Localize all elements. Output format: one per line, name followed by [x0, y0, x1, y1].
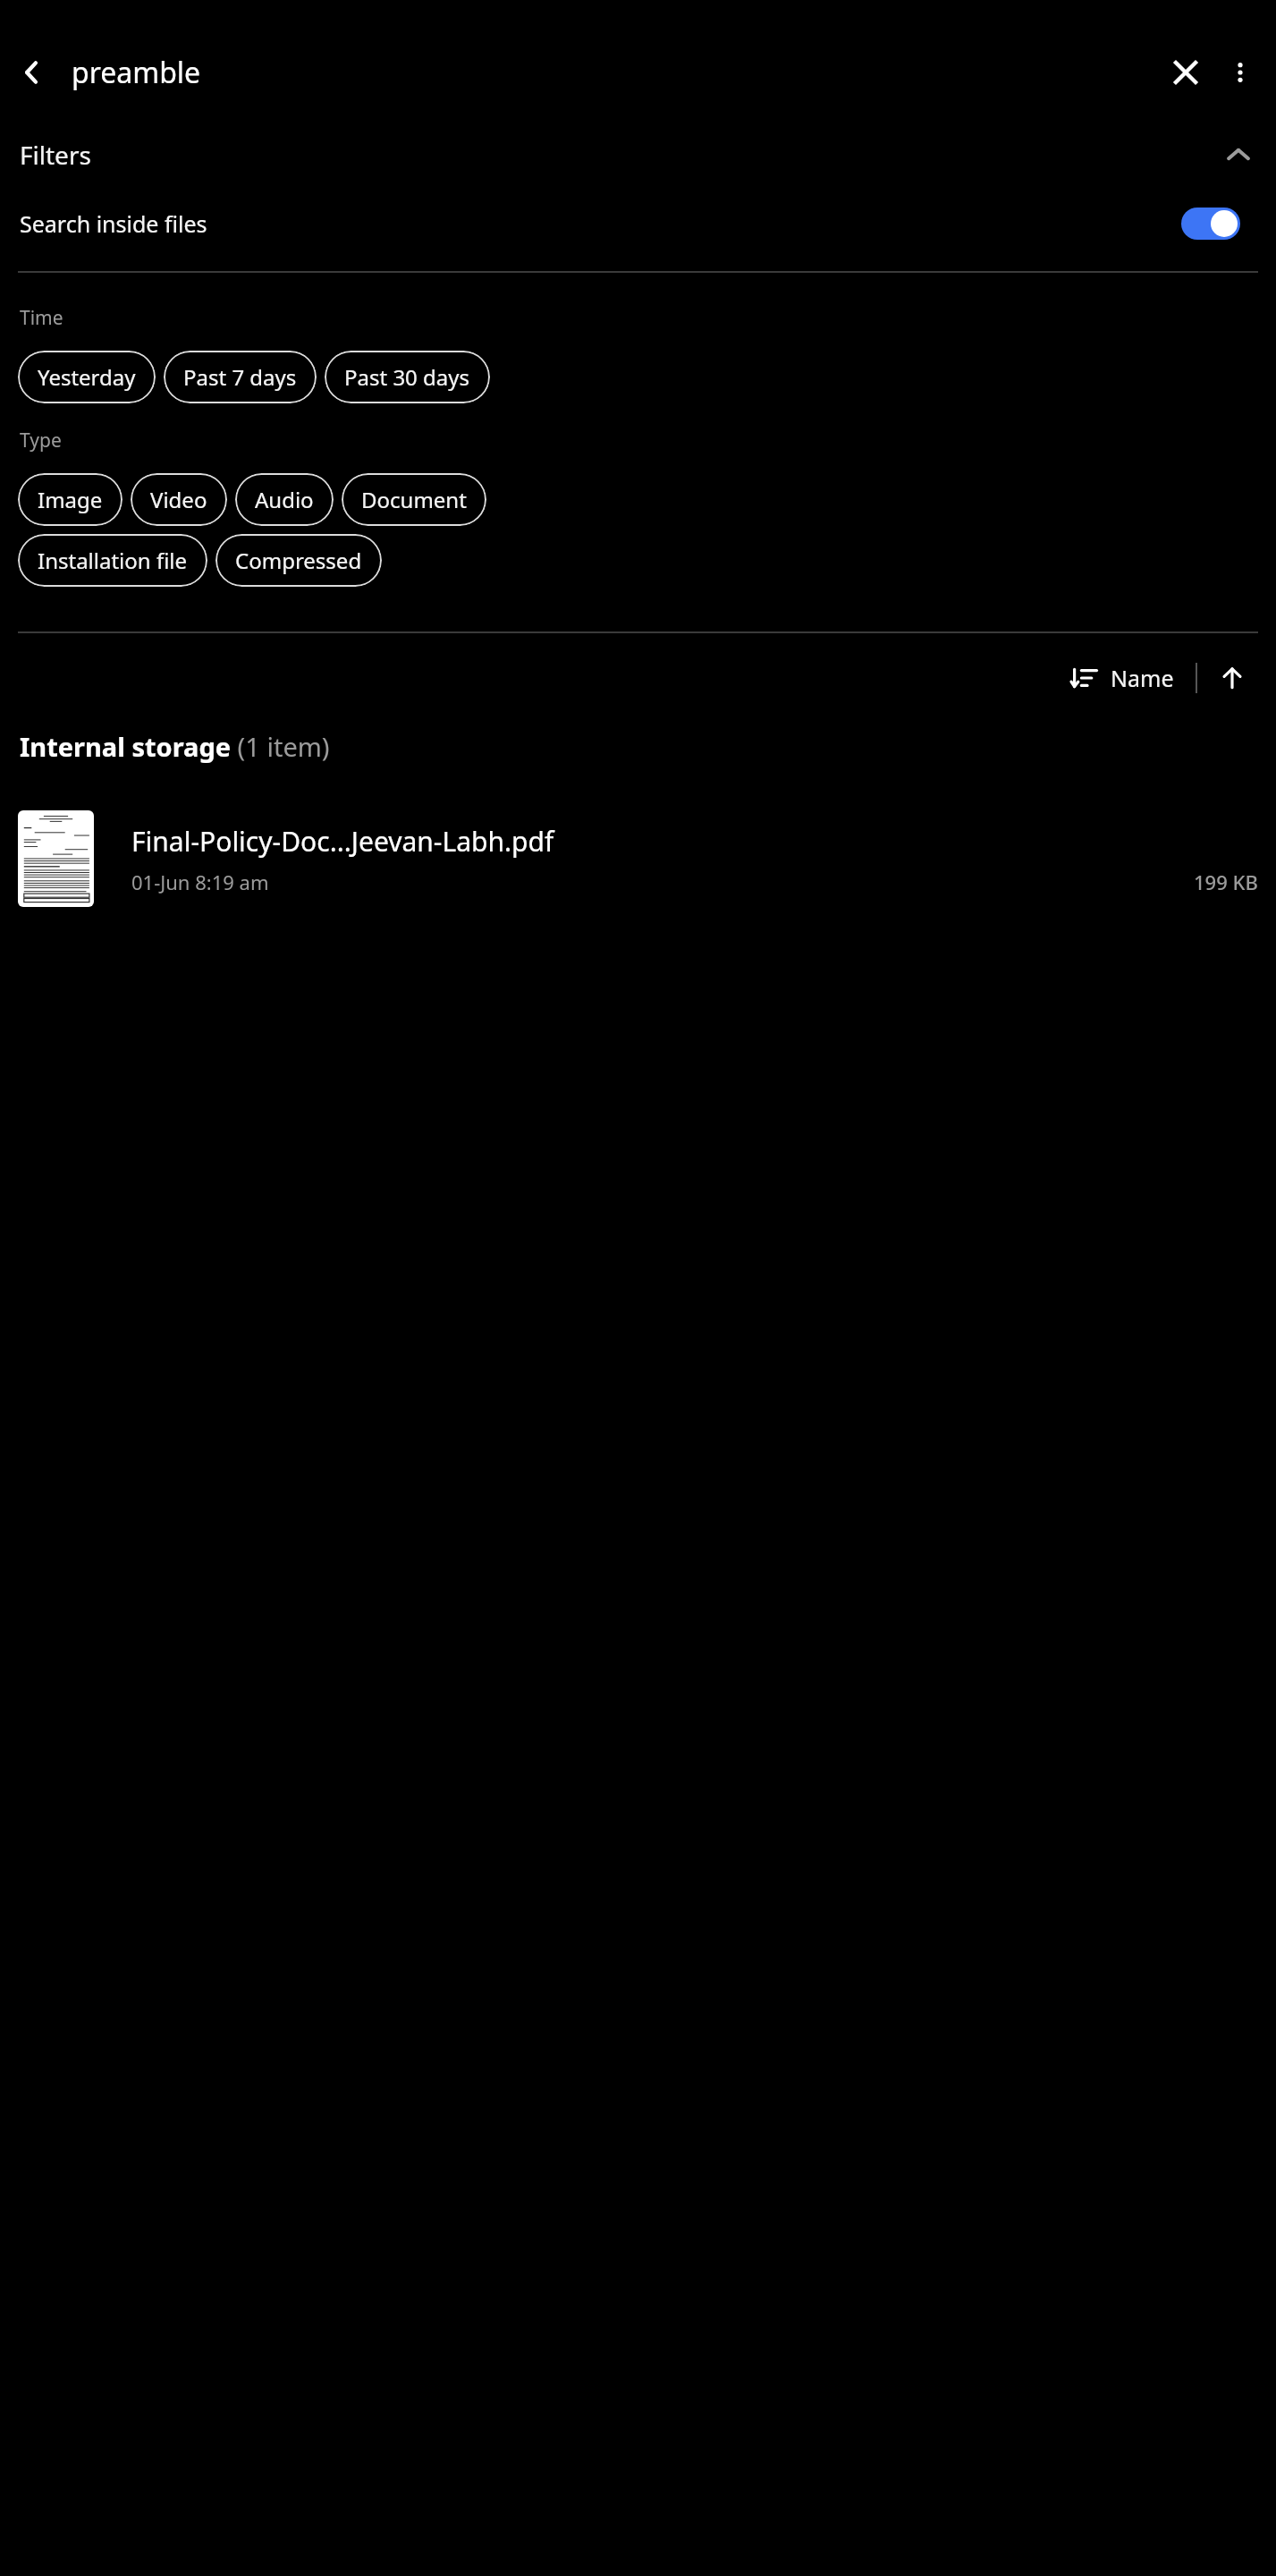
- staticText: Audio: [255, 485, 314, 514]
- staticText: Video: [150, 485, 207, 514]
- button[interactable]: Sort ascending: [1208, 654, 1256, 702]
- button[interactable]: Name: [1066, 663, 1179, 693]
- staticText: Compressed: [235, 546, 362, 575]
- staticText: 01-Jun 8:19 am: [131, 869, 269, 895]
- staticText: Type: [20, 428, 62, 453]
- staticText: Yesterday: [38, 362, 136, 392]
- button[interactable]: Document: [342, 473, 486, 526]
- staticText: Document: [361, 485, 467, 514]
- button[interactable]: More options: [1213, 46, 1267, 99]
- button[interactable]: Installation file: [18, 534, 207, 587]
- button[interactable]: Clear: [1158, 45, 1213, 100]
- button[interactable]: Audio: [235, 473, 334, 526]
- button[interactable]: Image: [18, 473, 123, 526]
- button[interactable]: Video: [131, 473, 227, 526]
- staticText: Past 7 days: [183, 362, 297, 392]
- button[interactable]: Search inside files: [0, 188, 1276, 259]
- staticText: Image: [38, 485, 103, 514]
- button[interactable]: Past 30 days: [325, 351, 490, 403]
- button[interactable]: Filters: [0, 130, 1276, 180]
- button[interactable]: Back: [4, 44, 61, 101]
- staticText: Search inside files: [20, 208, 207, 239]
- staticText: Final-Policy-Doc...Jeevan-Labh.pdf: [131, 823, 554, 860]
- staticText: Time: [20, 305, 63, 331]
- staticText: Name: [1111, 663, 1174, 693]
- staticText: preamble: [72, 53, 201, 92]
- button[interactable]: Compressed: [215, 534, 382, 587]
- staticText: Filters: [20, 138, 91, 172]
- staticText: Internal storage (1 item): [20, 729, 330, 764]
- staticText: Past 30 days: [344, 362, 470, 392]
- staticText: 199 KB: [1194, 869, 1258, 895]
- button[interactable]: Yesterday: [18, 351, 156, 403]
- button[interactable]: Past 7 days: [164, 351, 317, 403]
- button[interactable]: Final-Policy-Doc...Jeevan-Labh.pdf: [0, 792, 1276, 926]
- staticText: Installation file: [38, 546, 188, 575]
